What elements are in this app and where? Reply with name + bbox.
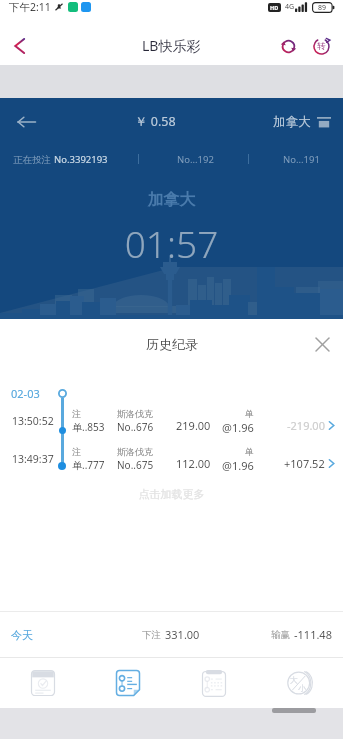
- button[interactable]: Refresh: [272, 30, 304, 62]
- button[interactable]: 加拿大: [273, 114, 331, 130]
- staticText: -219.00: [287, 418, 325, 433]
- staticText: @1.96: [222, 420, 254, 435]
- staticText: 转: [317, 41, 326, 52]
- staticText: 加拿大: [273, 114, 311, 130]
- staticText: 89: [318, 3, 327, 13]
- button[interactable]: Back: [0, 26, 38, 65]
- staticText: No..676: [117, 420, 154, 434]
- staticText: 13:49:37: [12, 452, 54, 466]
- staticText: 注: [72, 408, 81, 419]
- staticText: 331.00: [165, 627, 200, 642]
- staticText: 单..777: [72, 458, 105, 472]
- staticText: No.3392193: [54, 153, 108, 166]
- staticText: 219.00: [176, 418, 211, 433]
- staticText: 02-03: [11, 386, 40, 401]
- staticText: ￥ 0.58: [135, 113, 176, 130]
- staticText: 小: [298, 683, 306, 693]
- staticText: 正在投注: [13, 154, 51, 166]
- staticText: No...192: [177, 153, 214, 166]
- button[interactable]: 13:49:37: [0, 440, 343, 478]
- staticText: 历史纪录: [146, 336, 198, 352]
- button[interactable]: Big small: [257, 658, 343, 708]
- staticText: 13:50:52: [12, 414, 54, 428]
- staticText: 斯洛伐克: [117, 408, 153, 419]
- staticText: No..675: [117, 458, 154, 472]
- staticText: HD: [270, 4, 279, 11]
- staticText: LB快乐彩: [142, 36, 201, 55]
- staticText: 注: [72, 446, 81, 457]
- staticText: +107.52: [284, 456, 325, 471]
- staticText: @1.96: [222, 458, 254, 473]
- staticText: 斯洛伐克: [117, 446, 153, 457]
- staticText: 01:57: [0, 218, 343, 268]
- staticText: 112.00: [176, 456, 211, 471]
- staticText: 单..853: [72, 420, 105, 434]
- button[interactable]: 点击加载更多: [0, 487, 343, 501]
- staticText: 大: [290, 675, 298, 685]
- staticText: 今天: [11, 628, 33, 642]
- staticText: 加拿大: [0, 190, 343, 210]
- button[interactable]: Close: [307, 329, 337, 359]
- staticText: 单: [245, 408, 254, 419]
- staticText: 输赢: [271, 629, 290, 641]
- button[interactable]: 13:50:52: [0, 402, 343, 440]
- button[interactable]: Back: [10, 106, 42, 138]
- staticText: No...191: [283, 153, 320, 166]
- button[interactable]: Results: [0, 658, 85, 708]
- staticText: 单: [245, 446, 254, 457]
- staticText: 下注: [142, 629, 161, 641]
- staticText: 下午2:11: [9, 0, 51, 14]
- staticText: -111.48: [294, 627, 332, 642]
- staticText: 4G: [285, 2, 295, 12]
- button[interactable]: Transfer: [305, 30, 337, 62]
- button[interactable]: Bet records: [85, 658, 171, 708]
- button[interactable]: Reports: [171, 658, 257, 708]
